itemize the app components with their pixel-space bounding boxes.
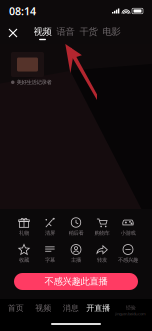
staticText: 小游戏: [120, 230, 135, 236]
button[interactable]: 转发: [89, 243, 115, 264]
staticText: 开直播: [86, 303, 110, 313]
staticText: 视频: [35, 303, 51, 313]
staticText: 字幕: [45, 257, 55, 263]
staticText: 不感兴趣此直播: [44, 276, 107, 287]
staticText: 主播: [71, 257, 81, 263]
button[interactable]: 清屏: [37, 216, 63, 237]
staticText: 电影: [102, 26, 120, 37]
button[interactable]: 视频: [29, 301, 57, 315]
button[interactable]: 视频: [31, 24, 54, 42]
staticText: 08:14: [9, 4, 36, 18]
staticText: 语音: [56, 26, 74, 37]
button[interactable]: 消息: [57, 301, 84, 315]
button[interactable]: 小游戏: [115, 216, 141, 237]
staticText: 稍后看: [68, 230, 83, 236]
staticText: 干货: [79, 26, 97, 37]
staticText: 不感兴趣: [118, 257, 138, 263]
staticText: 视频: [33, 26, 51, 37]
button[interactable]: 首页: [2, 301, 29, 315]
button[interactable]: 购物车: [89, 216, 115, 237]
button[interactable]: 电影: [100, 24, 123, 42]
staticText: 清屏: [45, 230, 55, 236]
button[interactable]: 不感兴趣此直播: [14, 273, 138, 290]
staticText: 购物车: [94, 230, 109, 236]
button[interactable]: 干货: [77, 24, 100, 42]
button[interactable]: 收藏: [11, 243, 37, 264]
button[interactable]: 稍后看: [63, 216, 89, 237]
button[interactable]: 语音: [54, 24, 77, 42]
staticText: 美好生活记录者: [16, 79, 51, 86]
staticText: 首页: [8, 303, 24, 313]
staticText: 经验: [125, 305, 135, 311]
staticText: 消息: [63, 303, 79, 313]
staticText: 收藏: [19, 257, 29, 263]
staticText: 礼物: [19, 230, 29, 236]
button[interactable]: Close: [4, 25, 22, 41]
button[interactable]: 开直播: [84, 301, 112, 315]
button[interactable]: 不感兴趣: [115, 243, 141, 264]
button[interactable]: 礼物: [11, 216, 37, 237]
staticText: jingyan.baidu.com: [115, 311, 146, 316]
button[interactable]: 字幕: [37, 243, 63, 264]
staticText: 转发: [97, 257, 107, 263]
button[interactable]: 主播: [63, 243, 89, 264]
